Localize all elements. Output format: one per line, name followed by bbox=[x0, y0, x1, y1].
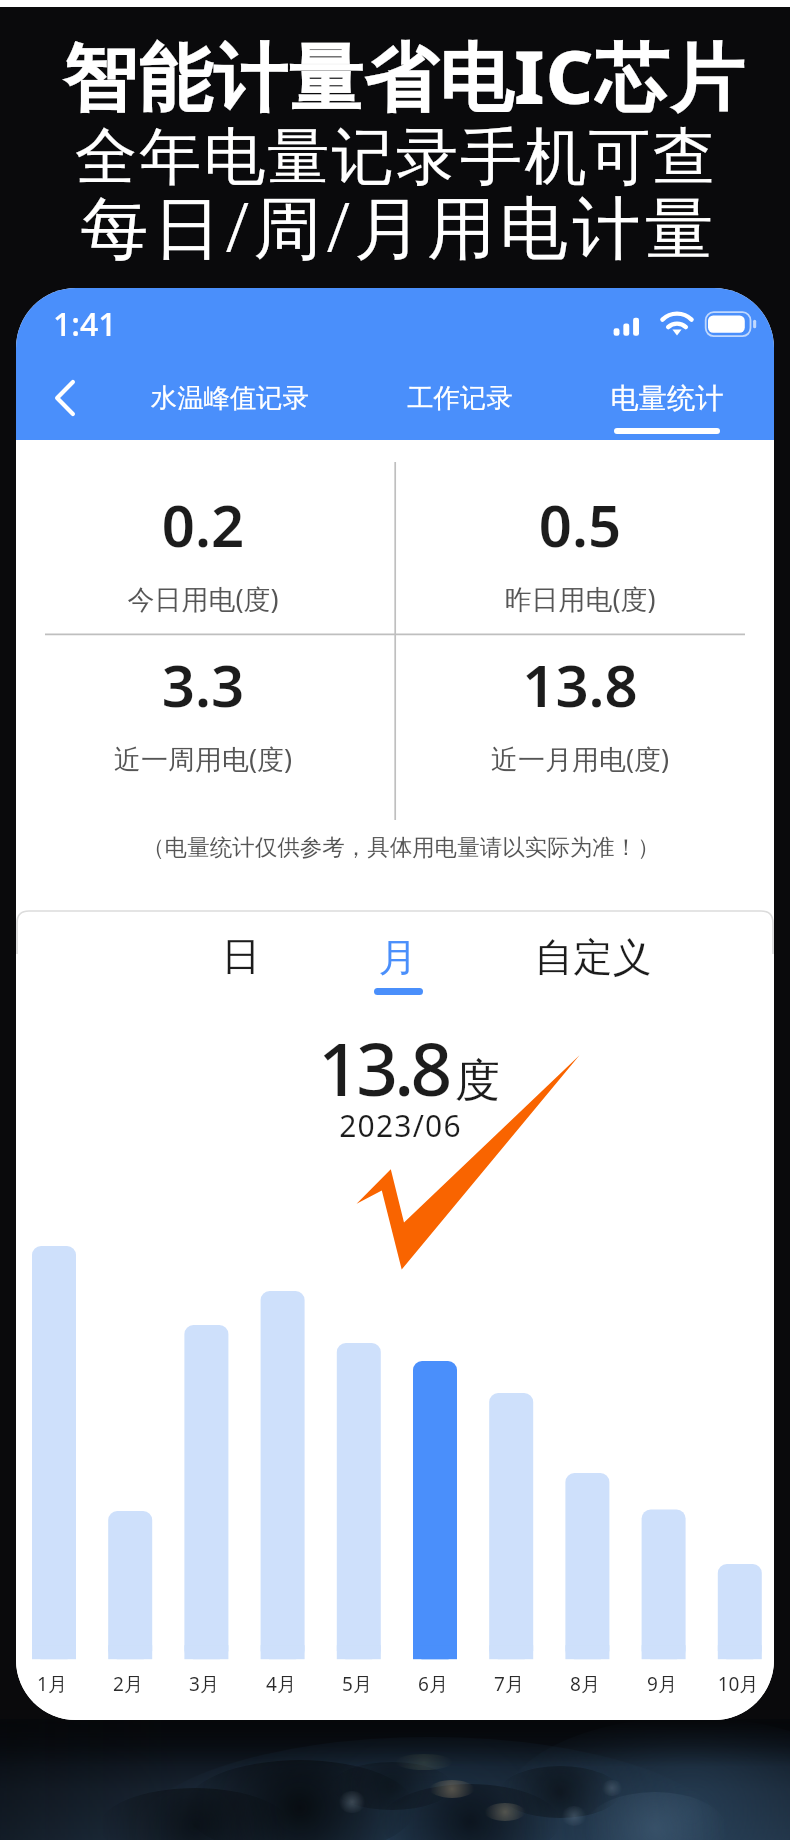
staticText: 全年电量记录手机可查 bbox=[1, 118, 790, 196]
button[interactable]: Back bbox=[26, 357, 103, 438]
button[interactable]: 13.8 bbox=[390, 639, 770, 759]
staticText: 工作记录 bbox=[360, 382, 560, 415]
button[interactable]: 工作记录 bbox=[360, 366, 560, 422]
staticText: 0.5 bbox=[390, 485, 770, 564]
staticText: 近一月用电(度) bbox=[390, 740, 770, 777]
staticText: 自定义 bbox=[513, 933, 673, 982]
button[interactable]: 电量统计 bbox=[575, 372, 759, 440]
button[interactable]: 3.3 bbox=[16, 639, 393, 759]
staticText: 智能计量省电IC芯片 bbox=[9, 25, 790, 126]
staticText: 3月 bbox=[159, 1671, 249, 1697]
button[interactable]: 水温峰值记录 bbox=[130, 366, 330, 422]
staticText: 1:41 bbox=[53, 302, 117, 346]
staticText: 2023/06 bbox=[339, 1105, 462, 1146]
button[interactable]: 0.2 bbox=[16, 479, 393, 599]
staticText: 昨日用电(度) bbox=[390, 580, 770, 617]
staticText: 9月 bbox=[617, 1671, 707, 1697]
staticText: 6月 bbox=[388, 1671, 478, 1697]
button[interactable]: 日 bbox=[161, 918, 321, 1008]
button[interactable]: 自定义 bbox=[513, 919, 673, 1009]
staticText: （电量统计仅供参考，具体用电量请以实际为准！） bbox=[22, 833, 774, 861]
staticText: 月 bbox=[318, 933, 478, 982]
staticText: 13.8 bbox=[390, 645, 770, 724]
staticText: 每日/周/月用电计量 bbox=[4, 179, 790, 272]
staticText: 度 bbox=[455, 1053, 500, 1110]
staticText: 4月 bbox=[236, 1671, 326, 1697]
staticText: 日 bbox=[161, 932, 321, 981]
staticText: 近一周用电(度) bbox=[16, 740, 393, 777]
staticText: 水温峰值记录 bbox=[130, 382, 330, 415]
staticText: 电量统计 bbox=[575, 381, 759, 417]
button[interactable]: 月 bbox=[318, 919, 478, 1009]
button[interactable]: 0.5 bbox=[390, 479, 770, 599]
staticText: 0.2 bbox=[16, 485, 393, 564]
staticText: 10月 bbox=[693, 1671, 774, 1697]
staticText: 7月 bbox=[464, 1671, 554, 1697]
staticText: 2月 bbox=[83, 1671, 173, 1697]
staticText: 8月 bbox=[540, 1671, 630, 1697]
staticText: 13.8 bbox=[318, 1018, 449, 1117]
staticText: 1月 bbox=[16, 1671, 97, 1697]
staticText: 5月 bbox=[312, 1671, 402, 1697]
staticText: 今日用电(度) bbox=[16, 580, 393, 617]
staticText: 3.3 bbox=[16, 645, 393, 724]
